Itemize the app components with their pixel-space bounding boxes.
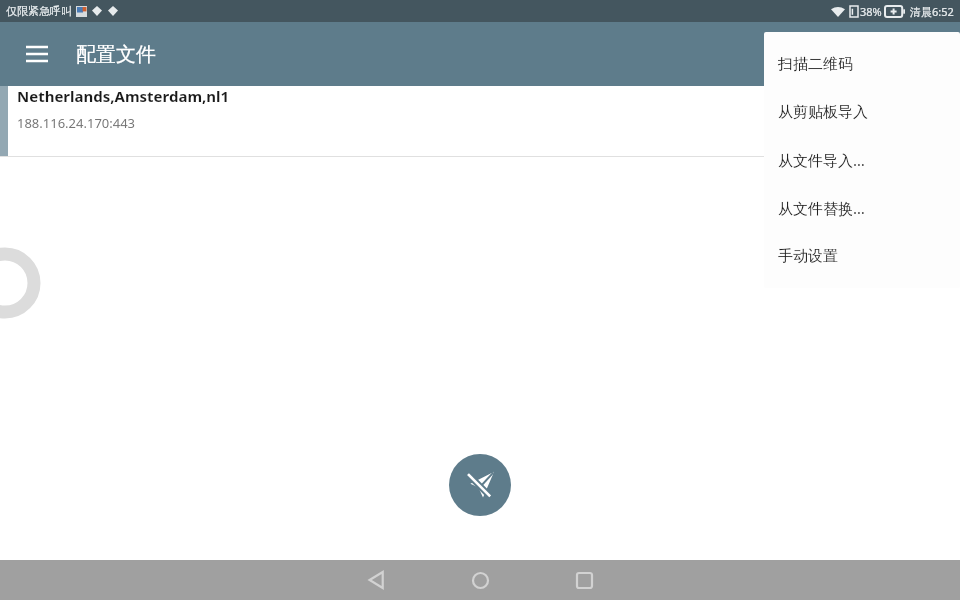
staticText: 38%	[860, 4, 882, 19]
button[interactable]: Recent apps	[534, 560, 634, 600]
button[interactable]: 手动设置	[764, 232, 960, 280]
staticText: Netherlands,Amsterdam,nl1	[17, 86, 230, 106]
staticText: 188.116.24.170:443	[17, 114, 136, 132]
button[interactable]: Netherlands,Amsterdam,nl1	[0, 86, 960, 156]
staticText: 手动设置	[778, 247, 838, 266]
button[interactable]: 从文件导入…	[764, 136, 960, 184]
button[interactable]: 从剪贴板导入	[764, 88, 960, 136]
button[interactable]: Disconnect	[449, 454, 511, 516]
button[interactable]: 从文件替换…	[764, 184, 960, 232]
staticText: 仅限紧急呼叫	[6, 4, 72, 18]
button[interactable]: Open navigation drawer	[16, 33, 58, 75]
staticText: 配置文件	[76, 42, 156, 67]
button[interactable]: 扫描二维码	[764, 40, 960, 88]
staticText: 从文件替换…	[778, 198, 865, 218]
staticText: 扫描二维码	[778, 55, 853, 74]
staticText: 从剪贴板导入	[778, 103, 868, 122]
staticText: 清晨6:52	[910, 4, 954, 19]
button[interactable]: Home	[430, 560, 530, 600]
staticText: 从文件导入…	[778, 150, 865, 170]
button[interactable]: Back	[326, 560, 426, 600]
